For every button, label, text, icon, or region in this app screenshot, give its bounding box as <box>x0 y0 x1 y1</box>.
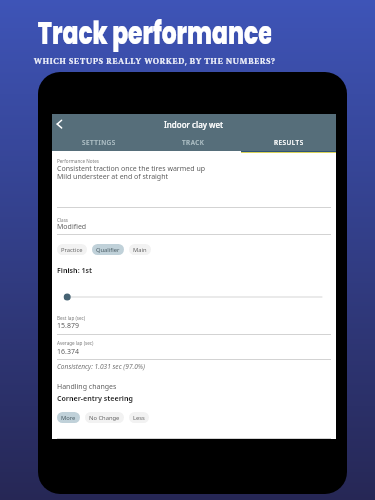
button[interactable]: No Change <box>85 412 124 423</box>
staticText: More <box>61 414 76 422</box>
staticText: Main <box>133 246 147 254</box>
staticText: Consistent traction once the tires warme… <box>57 164 206 174</box>
staticText: SETTINGS <box>82 138 116 147</box>
staticText: Track performance <box>38 11 271 54</box>
staticText: No Change <box>89 414 120 422</box>
staticText: Indoor clay wet <box>164 119 224 130</box>
staticText: 15.879 <box>57 321 79 331</box>
staticText: Practice <box>61 246 83 254</box>
staticText: Handling changes <box>57 382 117 392</box>
button[interactable]: Back <box>53 116 70 132</box>
staticText: Average lap (sec) <box>57 340 94 346</box>
staticText: RESULTS <box>274 138 304 147</box>
staticText: Best lap (sec) <box>57 315 86 321</box>
button[interactable]: More <box>57 412 80 423</box>
staticText: Modified <box>57 222 87 232</box>
staticText: Qualifier <box>96 246 120 254</box>
staticText: 16.374 <box>57 347 79 357</box>
staticText: WHICH SETUPS REALLY WORKED, BY THE NUMBE… <box>0 56 309 68</box>
button[interactable]: Practice <box>57 244 87 255</box>
staticText: Less <box>133 414 145 422</box>
button[interactable]: Qualifier <box>92 244 124 255</box>
button[interactable]: TRACK <box>146 136 241 148</box>
staticText: Consistency: 1.031 sec (97.0%) <box>57 362 146 371</box>
button[interactable]: SETTINGS <box>52 136 146 148</box>
button[interactable]: Main <box>129 244 151 255</box>
staticText: Performance Notes <box>57 158 99 164</box>
staticText: Finish: 1st <box>57 266 92 276</box>
staticText: Class <box>57 217 69 223</box>
staticText: Mild understeer at end of straight <box>57 172 169 182</box>
staticText: Corner-entry steering <box>57 394 133 404</box>
button[interactable]: Less <box>129 412 149 423</box>
staticText: TRACK <box>182 138 205 147</box>
button[interactable]: RESULTS <box>241 136 336 148</box>
